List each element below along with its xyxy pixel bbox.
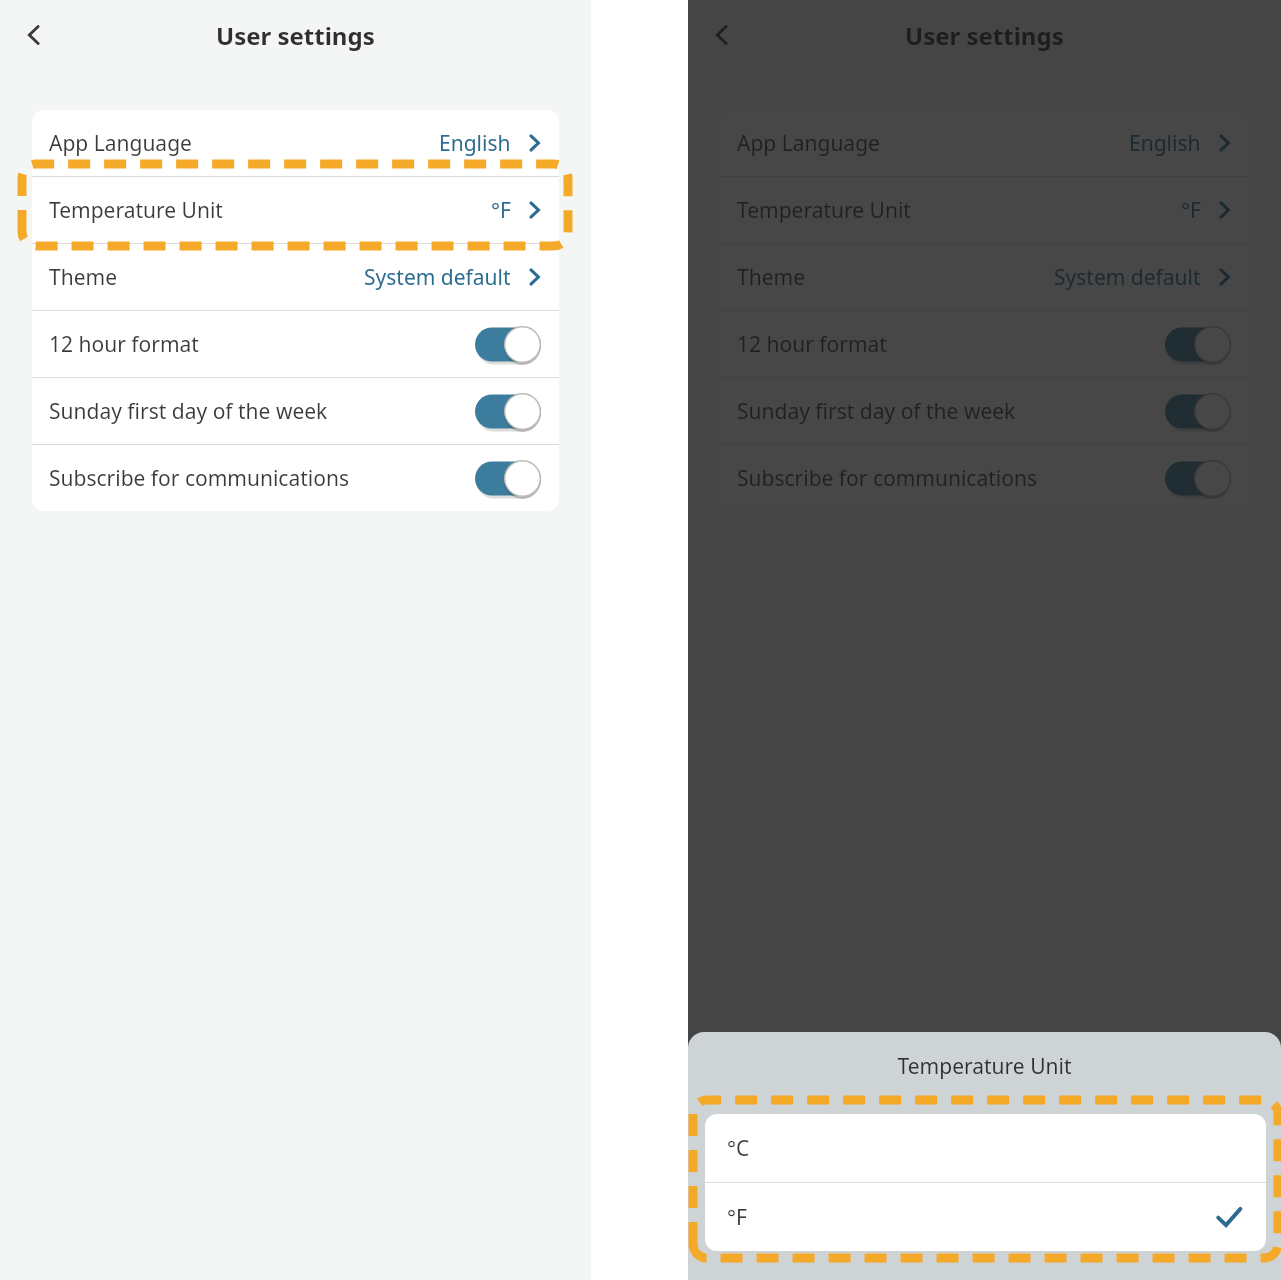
staticText: 12 hour format [737, 330, 887, 359]
button[interactable]: Theme [32, 244, 559, 310]
staticText: 12 hour format [49, 330, 199, 359]
staticText: App Language [737, 129, 880, 158]
other: Toggle Subscribe for communications [1165, 460, 1231, 497]
button[interactable]: °F [705, 1183, 1266, 1251]
staticText: °F [727, 1203, 747, 1232]
staticText: Theme [49, 263, 117, 292]
staticText: Subscribe for communications [737, 464, 1037, 493]
staticText: °C [727, 1134, 750, 1163]
staticText: Subscribe for communications [49, 464, 349, 493]
other: Toggle Subscribe for communications [475, 460, 541, 497]
staticText: Sunday first day of the week [737, 397, 1016, 426]
button[interactable]: 12 hour format [32, 311, 559, 377]
staticText: Theme [737, 263, 805, 292]
button[interactable]: Sunday first day of the week [32, 378, 559, 444]
staticText: Sunday first day of the week [49, 397, 328, 426]
staticText: English [439, 129, 511, 158]
staticText: °F [1181, 196, 1201, 225]
staticText: System default [364, 263, 511, 292]
other: Toggle Sunday first day of the week [1165, 393, 1231, 430]
button[interactable]: Back [698, 11, 746, 59]
button[interactable]: Theme [720, 244, 1249, 310]
staticText: °F [491, 196, 511, 225]
button[interactable]: Sunday first day of the week [720, 378, 1249, 444]
other: Toggle Sunday first day of the week [475, 393, 541, 430]
other: Toggle 12 hour format [475, 326, 541, 363]
button[interactable]: 12 hour format [720, 311, 1249, 377]
button[interactable]: Temperature Unit [720, 177, 1249, 243]
staticText: User settings [905, 19, 1064, 52]
staticText: User settings [216, 19, 375, 52]
staticText: English [1129, 129, 1201, 158]
staticText: System default [1054, 263, 1201, 292]
button[interactable]: °C [705, 1114, 1266, 1182]
button[interactable]: App Language [720, 110, 1249, 176]
staticText: Temperature Unit [688, 1052, 1281, 1081]
staticText: Temperature Unit [49, 196, 223, 225]
other: Toggle 12 hour format [1165, 326, 1231, 363]
staticText: App Language [49, 129, 192, 158]
button[interactable]: App Language [32, 110, 559, 176]
button[interactable]: Subscribe for communications [720, 445, 1249, 511]
staticText: Temperature Unit [737, 196, 911, 225]
button[interactable]: Back [10, 11, 58, 59]
button[interactable]: Subscribe for communications [32, 445, 559, 511]
button[interactable]: Temperature Unit [32, 177, 559, 243]
